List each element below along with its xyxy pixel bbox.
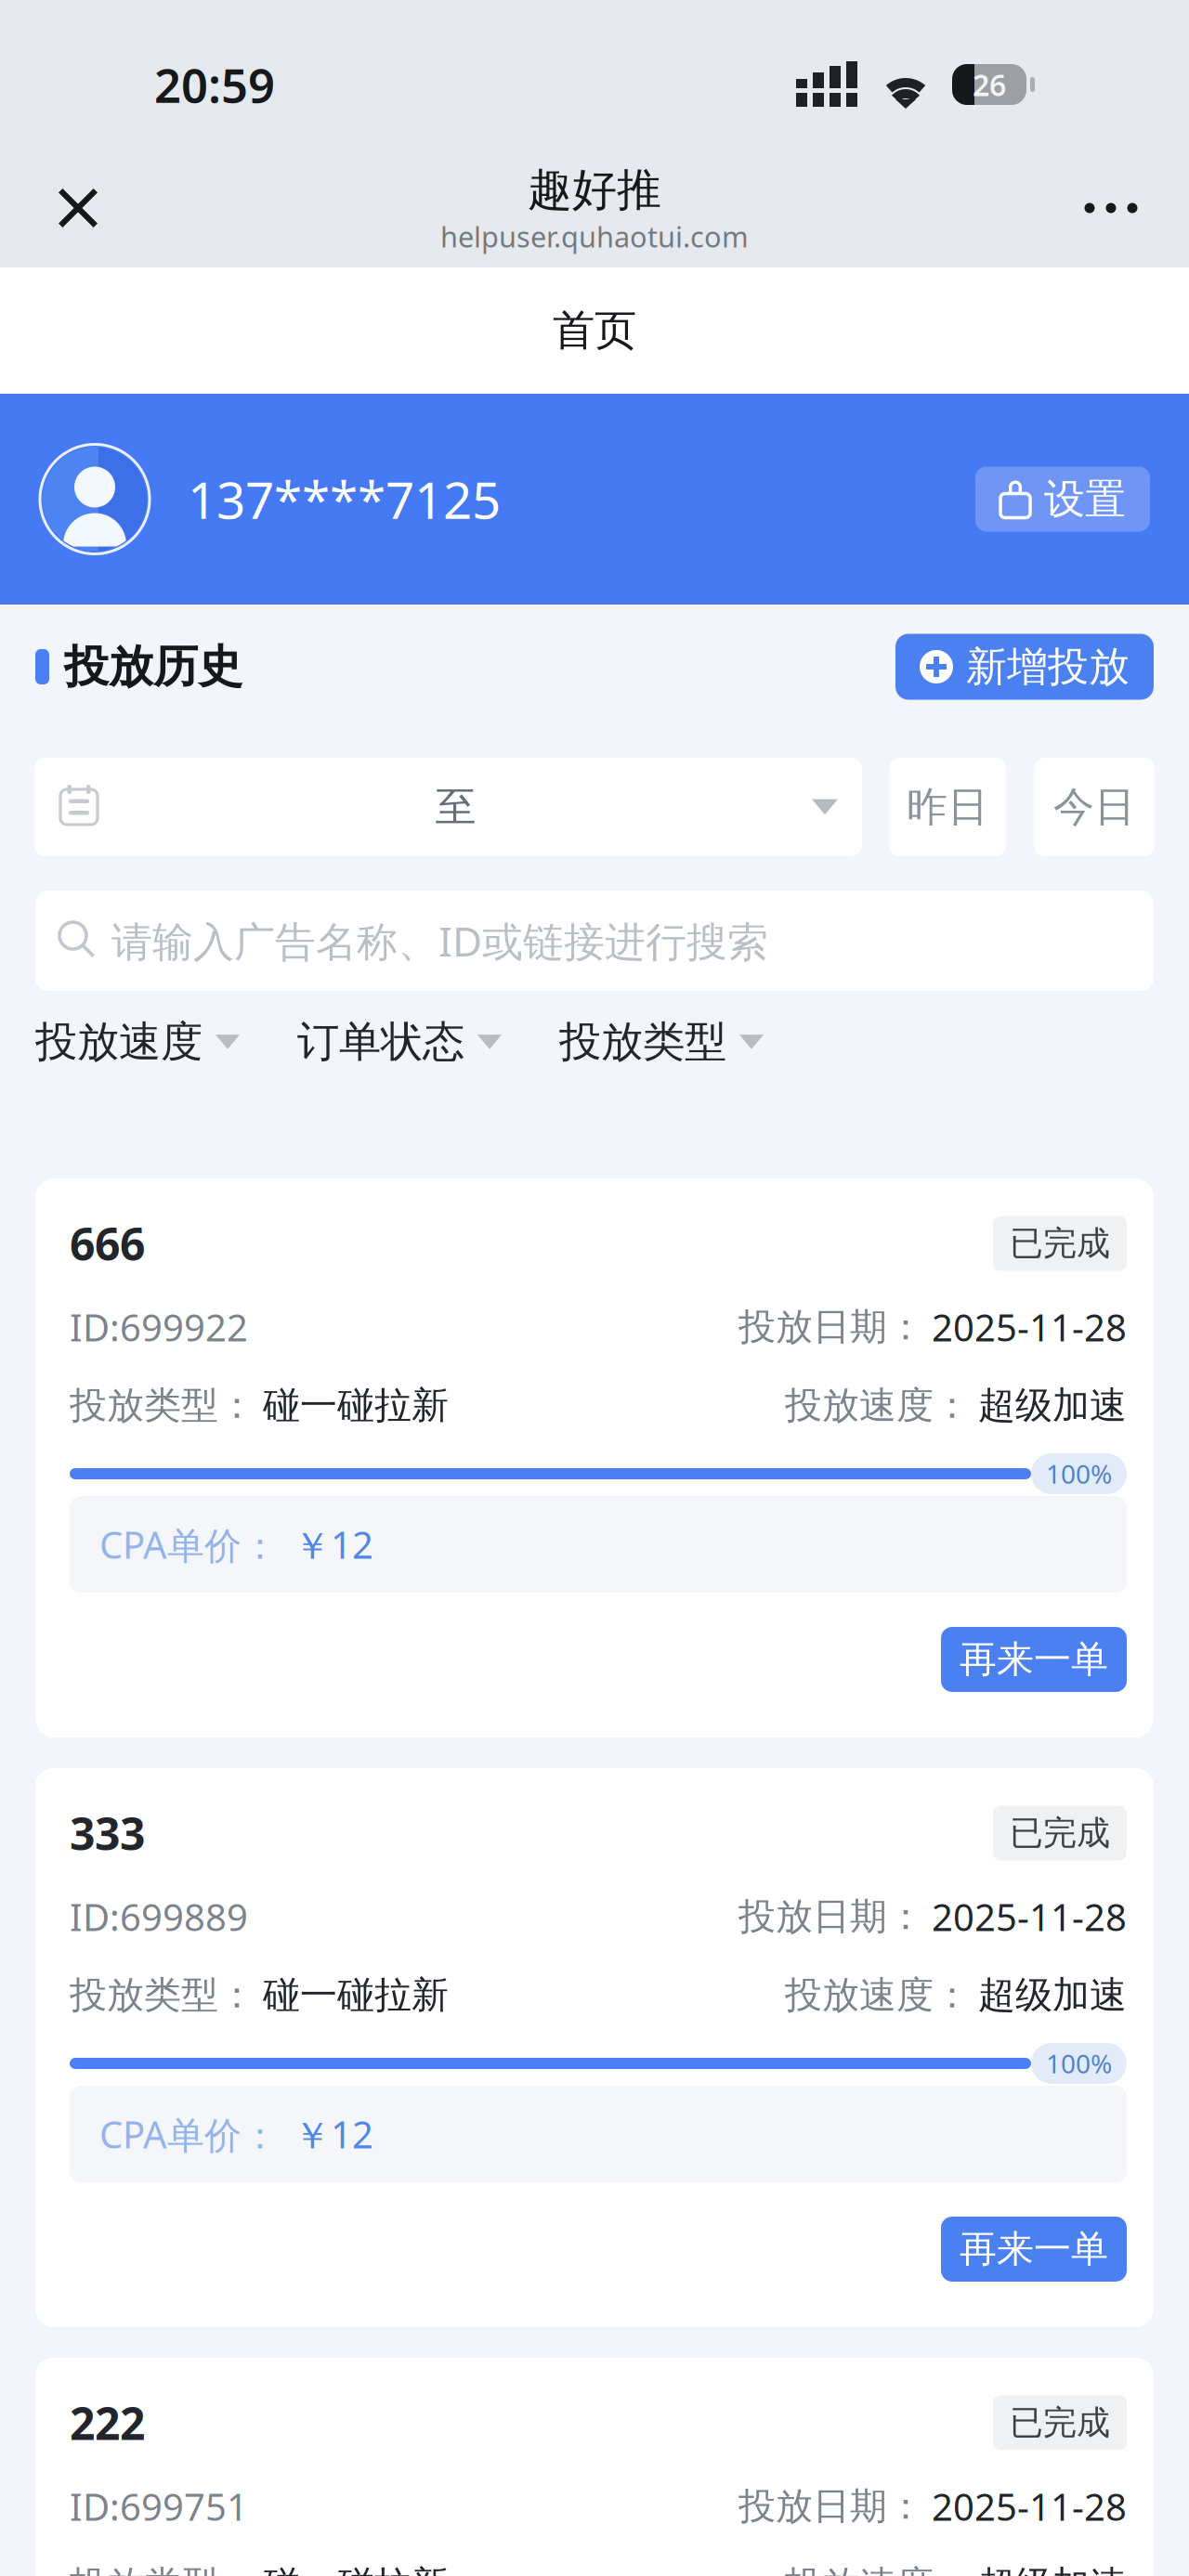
staticText: 投放速度： — [785, 2562, 971, 2576]
staticText: 222 — [70, 2393, 145, 2452]
staticText: 昨日 — [907, 782, 988, 832]
staticText: 333 — [70, 1803, 145, 1863]
staticText: 碰一碰拉新 — [263, 1383, 449, 1428]
staticText: 26 — [973, 65, 1006, 104]
staticText: 666 — [70, 1214, 145, 1273]
button[interactable]: 更多 — [1066, 163, 1156, 253]
staticText: 20:59 — [154, 53, 275, 116]
staticText: 再来一单 — [960, 2226, 1108, 2272]
staticText: 已完成 — [1010, 1813, 1110, 1854]
staticText: 投放类型： — [70, 2562, 255, 2576]
staticText: 2025-11-28 — [932, 1302, 1127, 1352]
staticText: 投放日期： — [738, 1894, 924, 1939]
button[interactable]: 新增投放 — [895, 634, 1154, 700]
staticText: 投放类型： — [70, 1383, 255, 1428]
button[interactable]: 今日 — [1034, 758, 1155, 856]
button[interactable]: 再来一单 — [941, 1627, 1127, 1692]
staticText: 首页 — [553, 305, 636, 356]
staticText: 投放历史 — [64, 639, 242, 694]
staticText: 2025-11-28 — [932, 1892, 1127, 1941]
staticText: ￥12 — [294, 1520, 373, 1569]
staticText: 投放速度： — [785, 1972, 971, 2018]
staticText: CPA单价： — [99, 1520, 279, 1569]
staticText: 投放类型： — [70, 1972, 255, 2018]
staticText: 新增投放 — [966, 642, 1130, 692]
staticText: ￥12 — [294, 2109, 373, 2159]
staticText: 至 — [435, 782, 476, 832]
staticText: 订单状态 — [297, 1016, 464, 1068]
staticText: 100% — [1046, 2046, 1112, 2081]
staticText: 投放速度： — [785, 1383, 971, 1428]
button[interactable]: 投放类型 — [559, 991, 764, 1093]
staticText: 已完成 — [1010, 1223, 1110, 1264]
staticText: 超级加速 — [978, 2562, 1127, 2576]
staticText: 投放速度 — [35, 1016, 203, 1068]
button[interactable]: 关闭 — [33, 163, 123, 253]
staticText: 再来一单 — [960, 1637, 1108, 1682]
staticText: 100% — [1046, 1456, 1112, 1491]
staticText: ID:699922 — [70, 1302, 248, 1352]
staticText: 投放类型 — [559, 1016, 726, 1068]
staticText: 设置 — [1044, 474, 1126, 524]
staticText: CPA单价： — [99, 2109, 279, 2159]
staticText: helpuser.quhaotui.com — [440, 217, 749, 255]
button[interactable]: 再来一单 — [941, 2217, 1127, 2282]
staticText: 投放日期： — [738, 2484, 924, 2529]
staticText: 超级加速 — [978, 1383, 1127, 1428]
button[interactable]: 投放速度 — [35, 991, 240, 1093]
staticText: 2025-11-28 — [932, 2482, 1127, 2531]
button[interactable]: 设置 — [975, 467, 1150, 532]
staticText: 137****7125 — [188, 465, 501, 533]
staticText: ID:699751 — [70, 2482, 248, 2531]
button[interactable]: 订单状态 — [297, 991, 502, 1093]
button[interactable]: 至 — [34, 758, 862, 856]
staticText: 碰一碰拉新 — [263, 1972, 449, 2018]
staticText: 超级加速 — [978, 1972, 1127, 2018]
staticText: 今日 — [1053, 782, 1135, 832]
button[interactable]: 请输入广告名称、ID或链接进行搜索 — [35, 891, 1154, 991]
staticText: 趣好推 — [528, 163, 661, 217]
staticText: 碰一碰拉新 — [263, 2562, 449, 2576]
staticText: 请输入广告名称、ID或链接进行搜索 — [111, 914, 768, 968]
staticText: 投放日期： — [738, 1304, 924, 1350]
button[interactable]: 昨日 — [889, 758, 1006, 856]
staticText: ID:699889 — [70, 1892, 248, 1941]
staticText: 已完成 — [1010, 2402, 1110, 2443]
